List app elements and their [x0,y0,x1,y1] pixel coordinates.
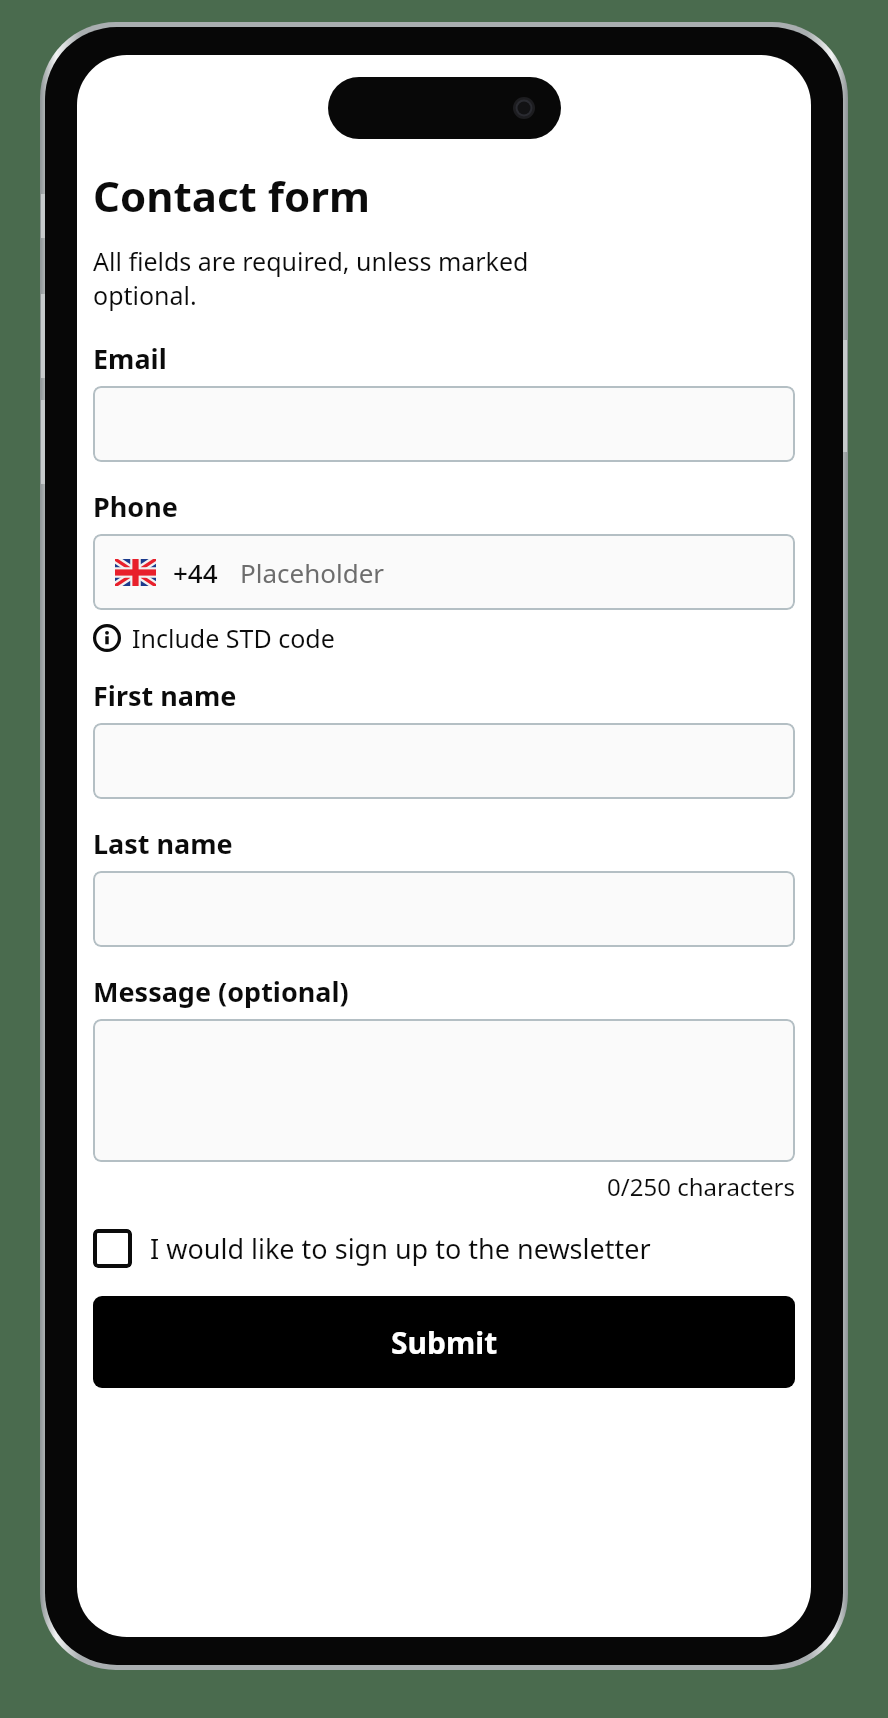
button[interactable]: +44 [93,534,795,610]
staticText: Include STD code [132,621,335,655]
staticText: Last name [93,825,233,862]
staticText: Message (optional) [93,973,349,1010]
staticText: Contact form [93,167,370,224]
button[interactable] [93,871,795,947]
staticText: All fields are required, unless marked o… [93,244,529,312]
staticText: +44 [173,555,218,590]
staticText: First name [93,677,237,714]
staticText: Phone [93,488,178,525]
staticText: I would like to sign up to the newslette… [150,1230,651,1267]
staticText: 0/250 characters [93,1170,795,1203]
button[interactable]: Information [93,621,335,655]
button[interactable] [93,386,795,462]
button[interactable]: Submit [93,1296,795,1388]
staticText: Submit [391,1322,498,1363]
button[interactable]: I would like to sign up to the newslette… [93,1229,795,1268]
staticText: Placeholder [240,555,385,590]
button[interactable] [93,1019,795,1162]
staticText: Email [93,340,167,377]
other: Information [93,624,121,652]
button[interactable] [93,723,795,799]
